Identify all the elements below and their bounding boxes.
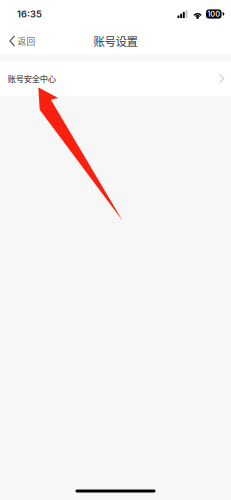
staticText: 返回 [17, 35, 35, 47]
button[interactable]: 返回 [0, 28, 41, 54]
button[interactable]: 账号安全中心 [0, 61, 231, 96]
staticText: 账号安全中心 [8, 72, 56, 84]
staticText: 账号设置 [93, 33, 137, 49]
staticText: 100 [207, 10, 220, 18]
staticText: 16:35 [17, 8, 42, 20]
